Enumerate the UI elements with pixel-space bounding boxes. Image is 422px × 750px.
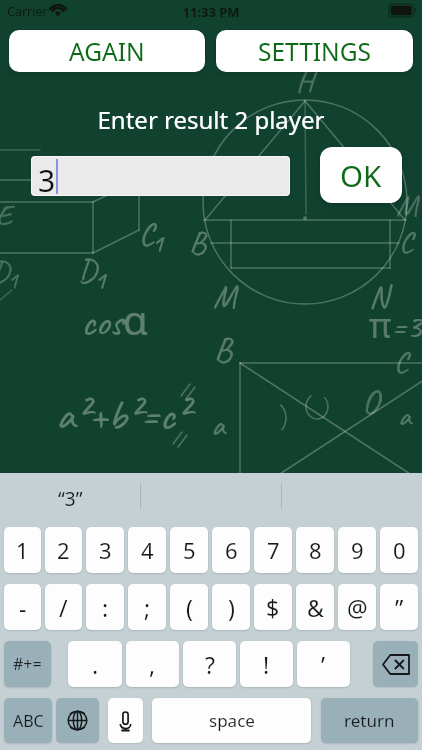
staticText: N <box>369 276 389 316</box>
staticText: $ <box>266 592 280 623</box>
staticText: AGAIN <box>69 35 145 68</box>
button[interactable]: AGAIN <box>9 30 205 72</box>
button[interactable]: ” <box>380 584 418 630</box>
staticText: “3” <box>58 486 83 512</box>
staticText: OK <box>340 155 382 195</box>
staticText: 4 <box>141 535 154 565</box>
staticText: B <box>214 328 232 371</box>
staticText: 8 <box>309 535 322 565</box>
staticText: Enter result 2 player <box>0 103 422 136</box>
staticText: . <box>92 649 99 680</box>
staticText: ! <box>263 649 270 680</box>
button[interactable]: ( <box>170 584 208 630</box>
staticText: ” <box>395 592 404 623</box>
button[interactable]: return <box>321 698 418 743</box>
button[interactable]: 0 <box>380 527 418 573</box>
button[interactable]: space <box>152 698 311 743</box>
button[interactable]: 3 <box>86 527 124 573</box>
button[interactable]: 5 <box>170 527 208 573</box>
staticText: , <box>149 649 156 680</box>
button[interactable]: ’ <box>297 641 350 687</box>
staticText: ( <box>186 592 193 623</box>
staticText: ) <box>228 592 235 623</box>
staticText: E <box>0 196 12 234</box>
button[interactable]: ! <box>240 641 293 687</box>
button[interactable]: & <box>296 584 334 630</box>
button[interactable]: : <box>86 584 124 630</box>
staticText: a²+b²=c² <box>56 388 189 442</box>
staticText: D₁ <box>78 250 107 290</box>
button[interactable]: - <box>4 584 41 630</box>
staticText: M <box>213 276 237 316</box>
staticText: cosα <box>81 292 148 347</box>
staticText: D₁ <box>0 252 19 290</box>
staticText: L <box>370 148 383 186</box>
staticText: #+= <box>13 653 42 675</box>
staticText: & <box>307 592 324 623</box>
staticText: 11:33 PM <box>0 3 422 21</box>
button[interactable]: 7 <box>254 527 292 573</box>
staticText: - <box>19 592 27 623</box>
button[interactable]: @ <box>338 584 376 630</box>
button[interactable]: Backspace <box>373 641 418 687</box>
button[interactable]: 8 <box>296 527 334 573</box>
button[interactable]: SETTINGS <box>216 30 413 72</box>
staticText: C <box>394 342 409 380</box>
staticText: 6 <box>225 535 238 565</box>
staticText: 9 <box>351 535 364 565</box>
staticText: ; <box>144 592 151 623</box>
staticText: π=3 <box>369 302 422 349</box>
staticText: return <box>344 709 395 732</box>
button[interactable]: / <box>45 584 82 630</box>
staticText: B <box>189 222 206 262</box>
button[interactable]: . <box>68 641 122 687</box>
staticText: SETTINGS <box>258 35 372 68</box>
staticText: : <box>102 592 109 623</box>
button[interactable]: ) <box>212 584 250 630</box>
button[interactable]: OK <box>320 147 402 203</box>
staticText: C <box>399 222 414 260</box>
staticText: H <box>296 62 313 100</box>
staticText: 3 <box>99 535 112 565</box>
staticText: O <box>362 380 379 423</box>
staticText: ? <box>205 649 215 680</box>
button[interactable]: 4 <box>128 527 166 573</box>
button[interactable]: Change keyboard language <box>56 698 99 743</box>
staticText: / <box>59 592 68 623</box>
button[interactable]: ; <box>128 584 166 630</box>
button[interactable]: 1 <box>4 527 41 573</box>
button[interactable]: Dictate <box>108 698 143 743</box>
staticText: 5 <box>183 535 196 565</box>
staticText: 7 <box>267 535 280 565</box>
staticText: @ <box>347 592 368 623</box>
staticText: a <box>398 396 412 434</box>
button[interactable]: ? <box>183 641 236 687</box>
staticText: ’ <box>321 649 326 680</box>
staticText: Carrier <box>7 3 48 20</box>
staticText: 3 <box>38 160 56 196</box>
staticText: ABC <box>13 710 44 732</box>
button[interactable]: , <box>126 641 179 687</box>
staticText: C₁ <box>139 213 165 253</box>
staticText: 1 <box>16 535 29 565</box>
button[interactable]: “3” <box>0 473 140 519</box>
staticText: space <box>209 709 255 732</box>
button[interactable]: 9 <box>338 527 376 573</box>
button[interactable]: #+= <box>4 641 51 687</box>
button[interactable]: $ <box>254 584 292 630</box>
button[interactable]: 6 <box>212 527 250 573</box>
staticText: M <box>396 186 418 224</box>
button[interactable]: ABC <box>4 698 52 743</box>
button[interactable]: 3 <box>31 156 290 196</box>
staticText: 0 <box>393 535 406 565</box>
staticText: 2 <box>57 535 70 565</box>
staticText: a <box>211 404 225 444</box>
button[interactable]: 2 <box>45 527 82 573</box>
